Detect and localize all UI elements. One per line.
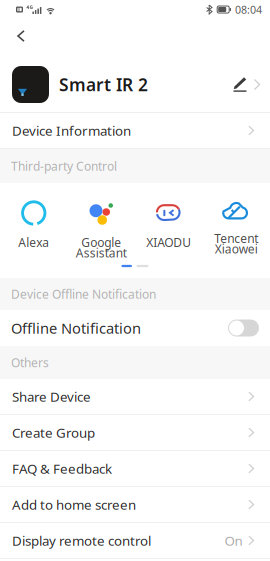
staticText: 08:04 <box>235 2 262 17</box>
staticText: Offline Notification <box>11 318 141 338</box>
staticText: Tencent <box>214 230 258 246</box>
button[interactable]: Back <box>0 19 42 53</box>
button[interactable]: Display remote control <box>0 523 270 559</box>
staticText: XIAODU <box>146 234 191 250</box>
button[interactable]: Create Group <box>0 415 270 451</box>
staticText: Add to home screen <box>12 496 136 513</box>
staticText: Display remote control <box>12 532 151 549</box>
staticText: Others <box>11 354 49 370</box>
staticText: On <box>224 532 242 549</box>
staticText: Device Information <box>12 122 131 139</box>
staticText: Assistant <box>76 245 127 261</box>
staticText: Google <box>81 234 121 250</box>
staticText: Smart IR 2 <box>59 73 148 96</box>
staticText: Device Offline Notification <box>11 286 156 302</box>
button[interactable]: Alexa <box>0 183 67 263</box>
button[interactable]: Edit device name <box>225 60 270 108</box>
staticText: Third-party Control <box>11 158 117 174</box>
button[interactable]: XIAODU <box>135 183 202 263</box>
staticText: Alexa <box>18 234 49 250</box>
staticText: Xiaowei <box>215 241 258 257</box>
button[interactable]: Google <box>67 183 135 263</box>
staticText: Create Group <box>12 424 95 441</box>
staticText: FAQ & Feedback <box>12 460 112 477</box>
button[interactable]: Add to home screen <box>0 487 270 523</box>
staticText: Share Device <box>12 388 91 405</box>
button[interactable]: Share Device <box>0 379 270 415</box>
button[interactable]: Tencent <box>202 183 270 263</box>
button[interactable]: FAQ & Feedback <box>0 451 270 487</box>
button[interactable]: Offline Notification toggle <box>0 310 270 346</box>
button[interactable]: Device Information <box>0 113 270 149</box>
